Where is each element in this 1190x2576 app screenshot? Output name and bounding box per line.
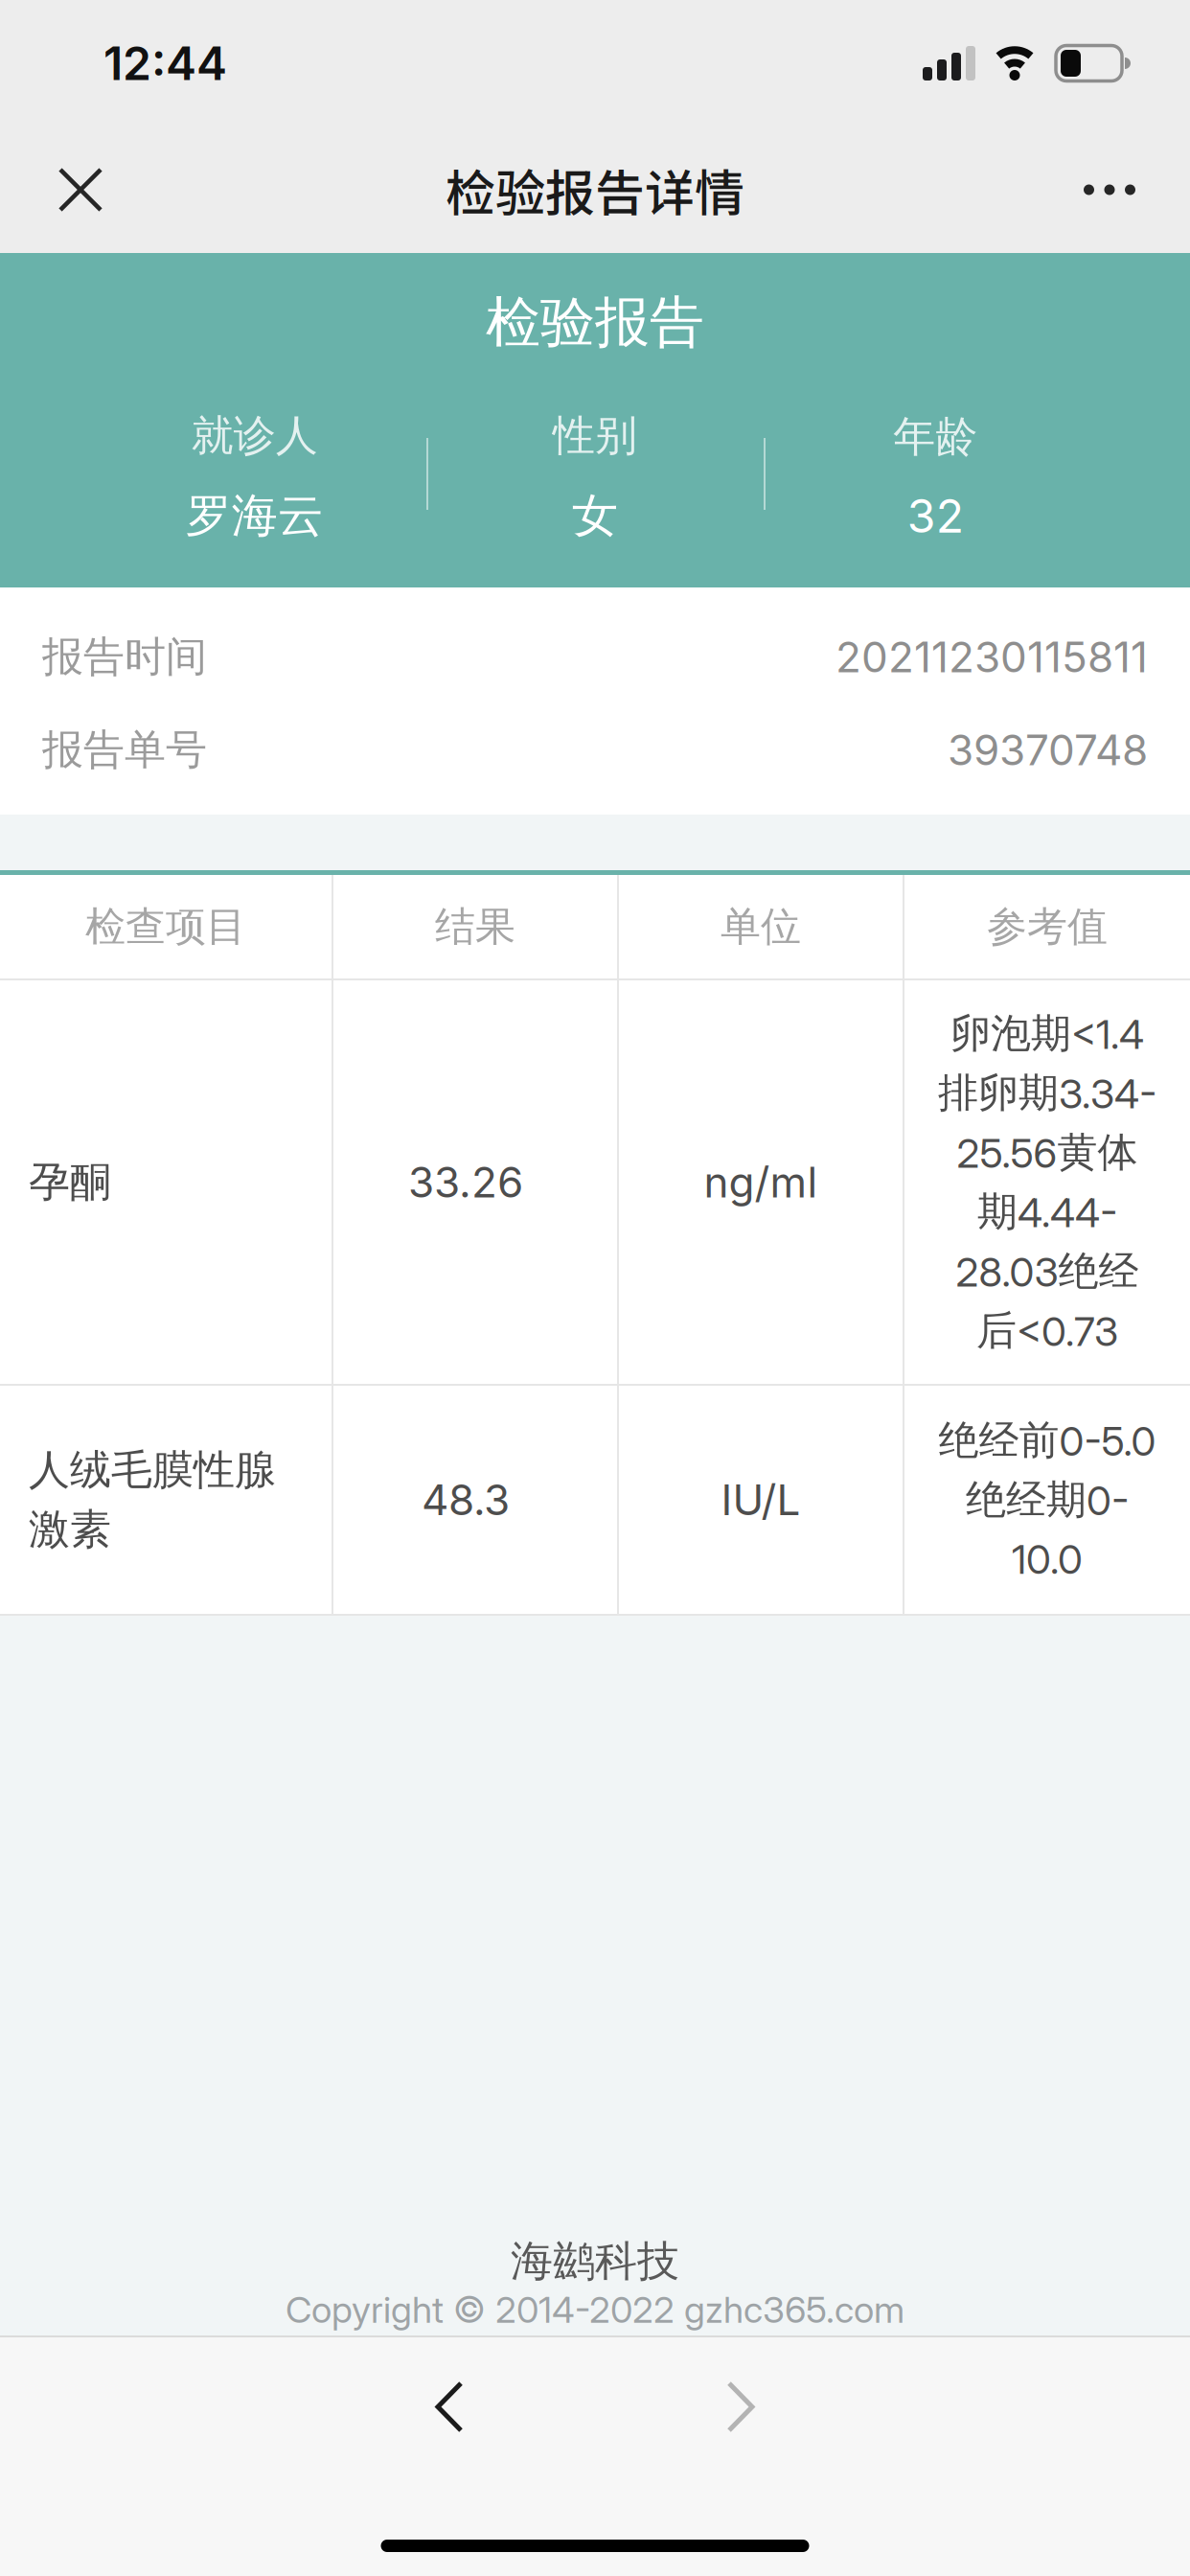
staticText: 绝经前0-5.0 (938, 1415, 1156, 1466)
button[interactable]: Forward (672, 2355, 811, 2460)
staticText: 后<0.73 (976, 1305, 1118, 1356)
staticText: 12:44 (103, 35, 227, 91)
staticText: 32 (907, 488, 964, 544)
staticText: 10.0 (1012, 1535, 1083, 1584)
staticText: 卵泡期<1.4 (950, 1008, 1144, 1059)
staticText: 检验报告 (486, 288, 704, 357)
staticText: 39370748 (948, 724, 1148, 775)
staticText: IU/L (721, 1474, 801, 1525)
staticText: 年龄 (893, 410, 978, 463)
staticText: 28.03绝经 (956, 1246, 1139, 1297)
staticText: 性别 (553, 409, 637, 462)
staticText: 罗海云 (186, 487, 324, 545)
button[interactable]: More (1064, 132, 1190, 248)
staticText: 单位 (721, 901, 801, 952)
staticText: ng/ml (704, 1157, 818, 1208)
staticText: 检查项目 (85, 901, 246, 952)
staticText: 排卵期3.34- (938, 1068, 1156, 1118)
staticText: 33.26 (408, 1157, 523, 1208)
staticText: 25.56黄体 (957, 1127, 1138, 1178)
staticText: 人绒毛膜性腺 (29, 1444, 276, 1496)
staticText: 海鹚科技 (511, 2235, 679, 2288)
staticText: 20211230115811 (835, 631, 1148, 682)
staticText: 结果 (435, 901, 515, 952)
staticText: Copyright © 2014-2022 gzhc365.com (286, 2288, 904, 2332)
staticText: 孕酮 (29, 1156, 111, 1208)
staticText: 期4.44- (977, 1186, 1117, 1237)
staticText: 女 (572, 487, 618, 545)
button[interactable]: Close (0, 126, 120, 253)
staticText: 绝经期0- (966, 1474, 1129, 1525)
staticText: 检验报告详情 (446, 154, 744, 226)
staticText: 报告单号 (42, 724, 207, 776)
staticText: 报告时间 (42, 631, 207, 683)
staticText: 激素 (29, 1504, 111, 1555)
staticText: 就诊人 (191, 409, 318, 462)
button[interactable]: Back (380, 2355, 519, 2460)
staticText: 参考值 (987, 901, 1108, 952)
staticText: 48.3 (422, 1474, 510, 1525)
